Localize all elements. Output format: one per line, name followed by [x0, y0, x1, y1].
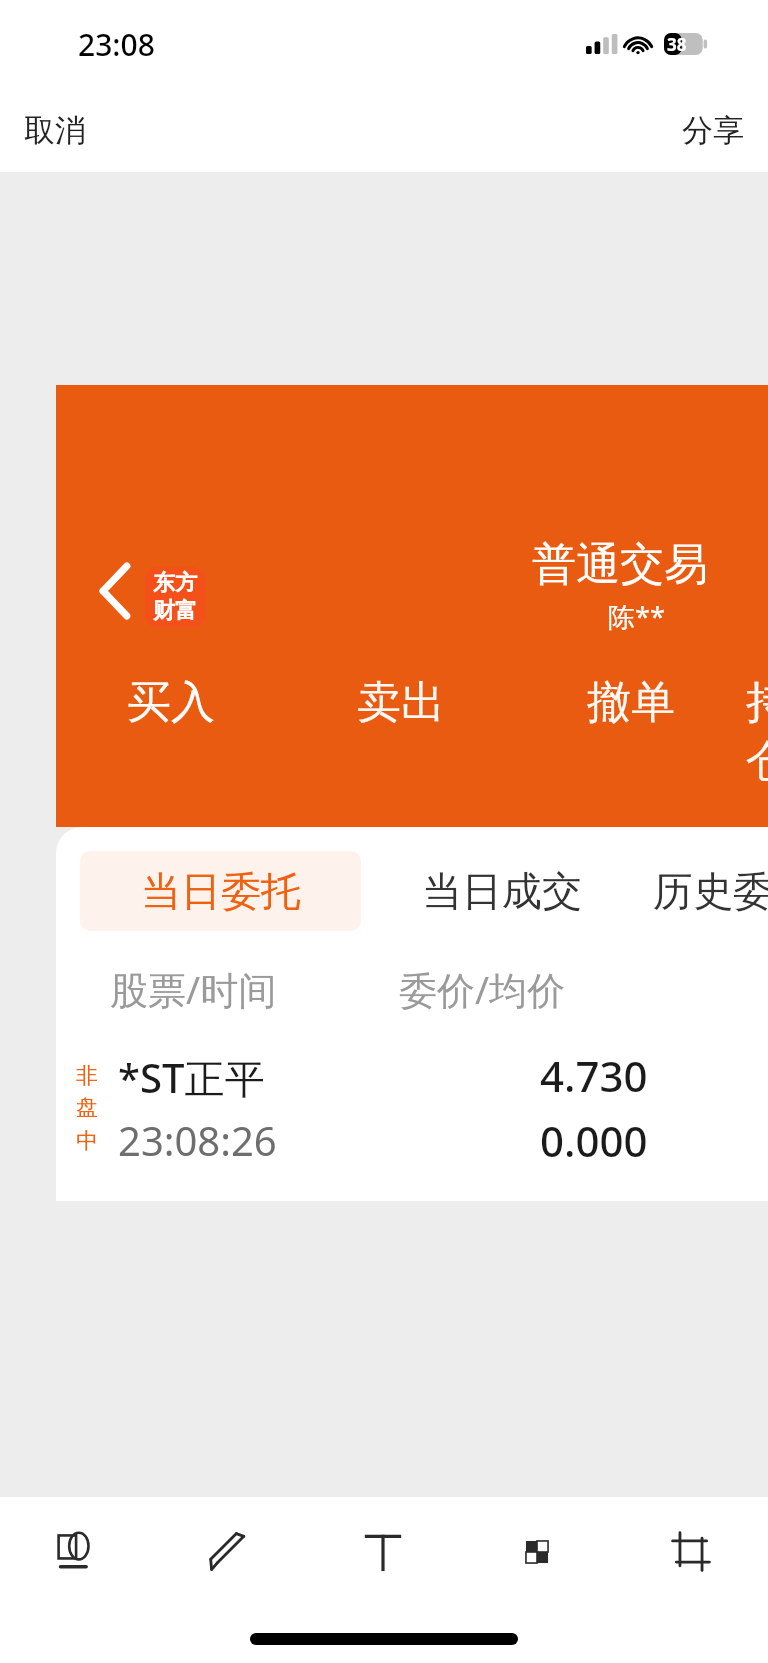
button[interactable]: 非 [56, 1047, 768, 1169]
staticText: 卖出 [357, 675, 445, 730]
button[interactable]: 文字 [306, 1497, 460, 1607]
staticText: 4.730 [540, 1047, 648, 1104]
button[interactable]: 裁剪 [614, 1497, 768, 1607]
staticText: 0.000 [540, 1112, 648, 1169]
staticText: 分享 [682, 111, 744, 150]
button[interactable]: 分享 [658, 97, 768, 164]
button[interactable]: 返回 [80, 555, 152, 627]
button[interactable]: 取消 [0, 97, 110, 164]
button[interactable]: 马赛克 [460, 1497, 614, 1607]
staticText: 取消 [24, 111, 86, 150]
staticText: 非 [76, 1062, 98, 1090]
staticText: 普通交易 [532, 537, 708, 592]
button[interactable]: 东方财富 [145, 567, 205, 627]
staticText: 历史委托 [653, 866, 768, 916]
staticText: *ST正平 [118, 1050, 265, 1105]
staticText: 陈** [608, 598, 665, 635]
staticText: 盘 [76, 1094, 98, 1122]
staticText: 委价/均价 [399, 963, 566, 1015]
button[interactable]: 当日委托 [80, 851, 361, 931]
staticText: 撤单 [587, 675, 675, 730]
button[interactable]: 历史委托 [642, 851, 768, 931]
staticText: 中 [76, 1127, 98, 1155]
staticText: 东方 [153, 569, 197, 597]
staticText: 财富 [153, 597, 197, 625]
button[interactable]: 当日成交 [361, 851, 642, 931]
button[interactable]: 画笔 [153, 1497, 306, 1607]
button[interactable]: 持仓 [746, 675, 768, 789]
staticText: 38 [667, 33, 687, 55]
button[interactable]: 形状 [0, 1497, 153, 1607]
button[interactable]: 买入 [56, 675, 286, 730]
staticText: 当日委托 [141, 866, 301, 916]
staticText: 当日成交 [422, 866, 582, 916]
staticText: 23:08 [78, 24, 155, 65]
staticText: 股票/时间 [110, 963, 277, 1015]
staticText: 持仓 [746, 675, 768, 789]
button[interactable]: 撤单 [516, 675, 746, 730]
staticText: 23:08:26 [118, 1113, 277, 1167]
button[interactable]: 卖出 [286, 675, 516, 730]
staticText: 买入 [127, 675, 215, 730]
